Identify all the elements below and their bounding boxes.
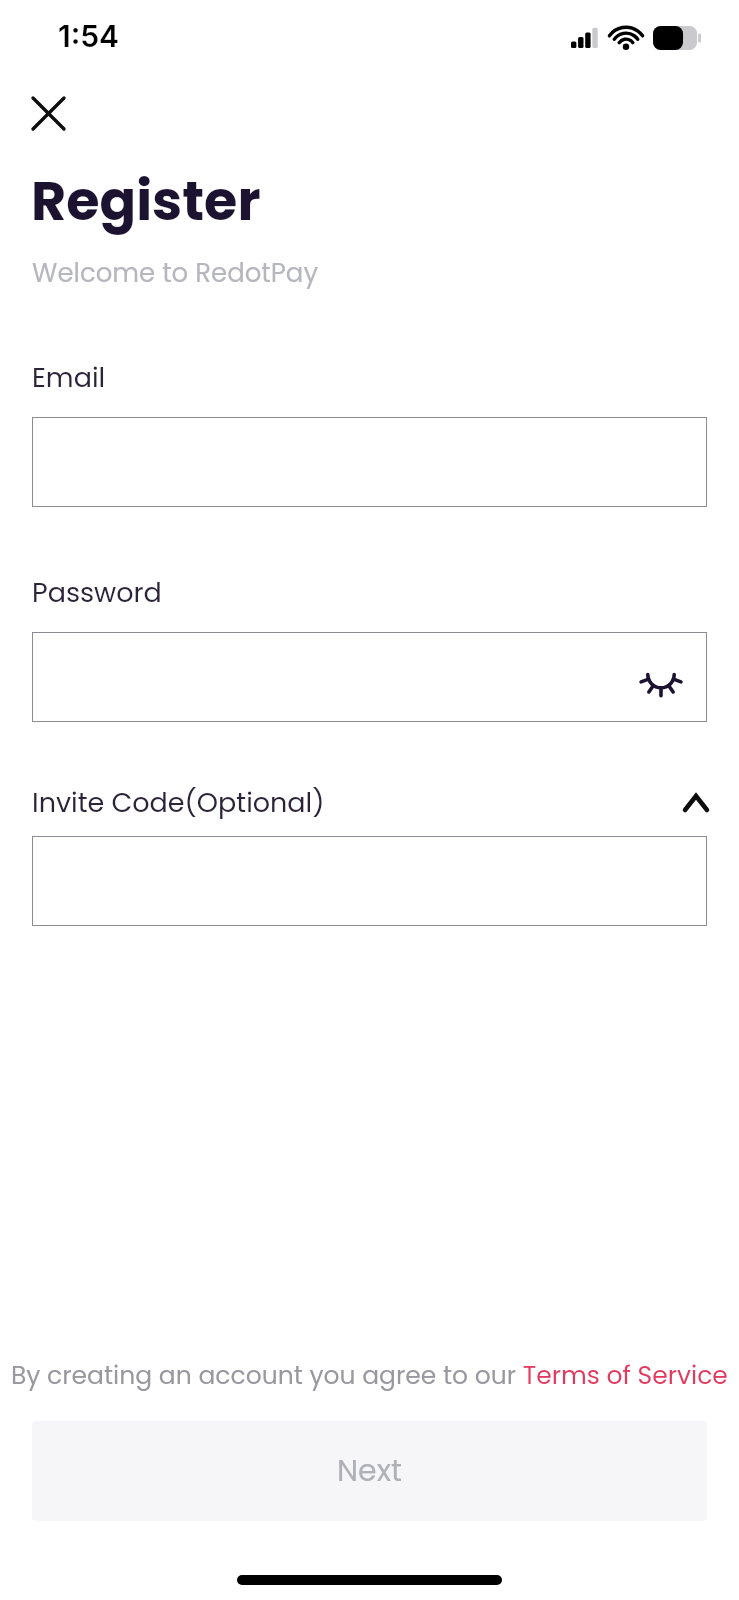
button[interactable]: Next	[32, 1421, 707, 1521]
button[interactable]: Show password	[32, 632, 707, 722]
button[interactable]: Show password	[637, 653, 685, 701]
button[interactable]: Close	[24, 89, 72, 137]
staticText: Password	[32, 574, 162, 612]
staticText: Welcome to RedotPay	[32, 255, 319, 291]
button[interactable]	[32, 836, 707, 926]
staticText: Email	[32, 359, 106, 397]
button[interactable]	[32, 417, 707, 507]
staticText: By creating an account you agree to our …	[11, 1358, 728, 1393]
staticText: Invite Code(Optional)	[32, 784, 325, 822]
button[interactable]: Invite Code(Optional)	[32, 784, 707, 822]
staticText: Register	[31, 163, 261, 239]
staticText: 1:54	[58, 18, 120, 54]
staticText: Next	[337, 1450, 402, 1492]
